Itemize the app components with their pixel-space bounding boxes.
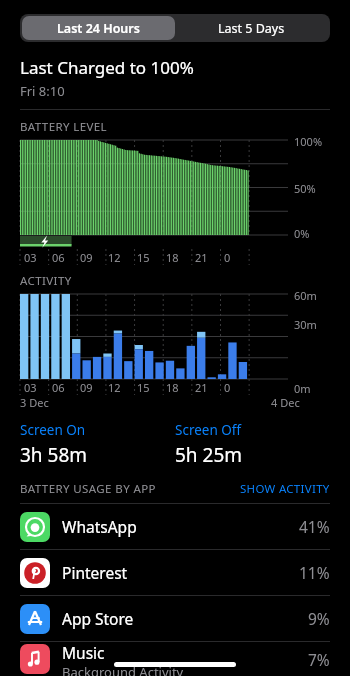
staticText: App Store [62, 608, 134, 629]
staticText: BATTERY USAGE BY APP [20, 481, 156, 497]
staticText: Background Activity [62, 663, 184, 676]
staticText: 06 [52, 380, 65, 395]
staticText: 60m [294, 288, 317, 303]
staticText: Last 5 Days [218, 20, 285, 37]
button[interactable]: Pinterest [20, 549, 330, 595]
staticText: 09 [80, 380, 93, 395]
staticText: Last Charged to 100% [20, 56, 194, 79]
staticText: BATTERY LEVEL [20, 119, 108, 135]
button[interactable]: App Store [20, 595, 330, 641]
staticText: 0m [294, 381, 311, 396]
staticText: 21 [195, 380, 208, 395]
button[interactable]: WhatsApp [20, 503, 330, 549]
staticText: 41% [299, 516, 330, 537]
staticText: 9% [308, 608, 330, 629]
staticText: 21 [195, 250, 208, 265]
staticText: Screen On [20, 421, 86, 439]
staticText: 3 Dec [20, 395, 49, 410]
staticText: 15 [137, 380, 150, 395]
button[interactable]: Last 24 Hours [22, 16, 175, 40]
staticText: 0 [224, 380, 231, 395]
staticText: 06 [52, 250, 65, 265]
staticText: 03 [24, 380, 37, 395]
staticText: 12 [108, 250, 121, 265]
staticText: 15 [137, 250, 150, 265]
staticText: Screen Off [175, 421, 242, 439]
staticText: 3h 58m [20, 442, 88, 468]
staticText: 18 [166, 380, 179, 395]
button[interactable]: Last 5 Days [175, 16, 328, 40]
staticText: ACTIVITY [20, 273, 72, 289]
staticText: 50% [294, 181, 316, 196]
staticText: Pinterest [62, 562, 128, 583]
staticText: 18 [166, 250, 179, 265]
staticText: Music [62, 642, 105, 663]
staticText: SHOW ACTIVITY [240, 481, 330, 497]
staticText: 12 [108, 380, 121, 395]
staticText: 4 Dec [271, 395, 300, 410]
button[interactable]: Screen Off [175, 421, 330, 468]
button[interactable]: Music [20, 641, 330, 676]
button[interactable]: SHOW ACTIVITY [240, 481, 330, 497]
staticText: 100% [294, 134, 323, 149]
staticText: 11% [299, 562, 330, 583]
staticText: WhatsApp [62, 516, 137, 537]
staticText: 7% [308, 649, 330, 670]
staticText: 5h 25m [175, 442, 243, 468]
staticText: Fri 8:10 [20, 82, 65, 100]
staticText: Last 24 Hours [57, 20, 140, 37]
staticText: 09 [80, 250, 93, 265]
staticText: 03 [24, 250, 37, 265]
staticText: 0 [224, 250, 231, 265]
staticText: 30m [294, 317, 317, 332]
staticText: 0% [294, 226, 310, 240]
button[interactable]: Screen On [20, 421, 175, 468]
